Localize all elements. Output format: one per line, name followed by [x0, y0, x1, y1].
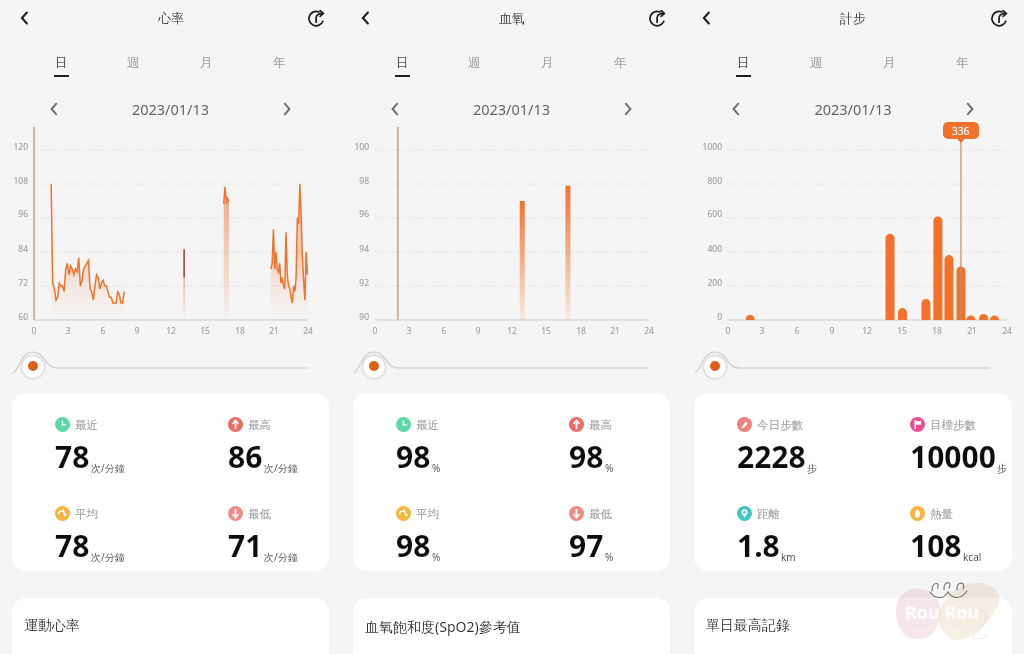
button[interactable]: 年 — [243, 36, 316, 82]
staticText: 血氧飽和度(SpO2)參考值 — [365, 617, 521, 636]
button[interactable]: Previous day — [723, 96, 749, 122]
staticText: 78 — [55, 436, 90, 477]
button[interactable]: 日 — [25, 36, 97, 82]
staticText: 72 — [0, 277, 28, 289]
staticText: 最低 — [248, 507, 271, 521]
staticText: 3 — [58, 325, 78, 337]
staticText: 200 — [682, 277, 722, 289]
staticText: 24 — [298, 325, 318, 337]
staticText: 108 — [0, 175, 28, 187]
staticText: Rou Rou — [905, 600, 980, 625]
staticText: 今日步數 — [757, 418, 803, 432]
staticText: 24 — [639, 325, 659, 337]
staticText: 次/分鐘 — [264, 550, 298, 564]
button[interactable]: 月 — [511, 36, 584, 82]
staticText: 單日最高記錄 — [706, 617, 790, 635]
button[interactable]: 日 — [366, 36, 438, 82]
staticText: 18 — [927, 325, 947, 337]
button[interactable]: 月 — [853, 36, 926, 82]
staticText: 年 — [273, 55, 286, 71]
staticText: 84 — [0, 243, 28, 255]
button[interactable]: Next day — [274, 96, 300, 122]
staticText: 21 — [962, 325, 982, 337]
button[interactable]: 月 — [170, 36, 243, 82]
staticText: 6 — [787, 325, 807, 337]
button[interactable]: Back — [350, 3, 380, 33]
staticText: 96 — [341, 208, 369, 220]
button[interactable]: Time slider — [22, 355, 44, 377]
staticText: 年 — [614, 55, 627, 71]
staticText: 6 — [93, 325, 113, 337]
staticText: 18 — [571, 325, 591, 337]
button[interactable]: Time slider — [704, 355, 726, 377]
staticText: 12 — [502, 325, 522, 337]
staticText: https://rourou.com — [907, 626, 961, 634]
button[interactable]: Time slider — [363, 355, 385, 377]
staticText: 最近 — [75, 418, 98, 432]
staticText: 9 — [468, 325, 488, 337]
button[interactable]: 週 — [438, 36, 511, 82]
staticText: 98 — [341, 175, 369, 187]
staticText: 120 — [0, 141, 28, 153]
staticText: 15 — [892, 325, 912, 337]
staticText: 97 — [569, 525, 604, 566]
button[interactable]: 週 — [780, 36, 853, 82]
staticText: 92 — [341, 277, 369, 289]
staticText: 目標步數 — [930, 418, 976, 432]
staticText: 1000 — [682, 141, 722, 153]
staticText: 100 — [341, 141, 369, 153]
staticText: 熱量 — [930, 507, 953, 521]
staticText: 600 — [682, 208, 722, 220]
button[interactable]: Previous day — [41, 96, 67, 122]
button[interactable]: 週 — [97, 36, 170, 82]
button[interactable]: 最近 — [12, 393, 329, 571]
staticText: 平均 — [416, 507, 439, 521]
button[interactable]: Refresh — [302, 3, 332, 33]
staticText: 71 — [228, 525, 263, 566]
staticText: 15 — [195, 325, 215, 337]
staticText: 0 — [682, 311, 722, 323]
button[interactable]: 336 — [943, 122, 979, 139]
staticText: 最低 — [589, 507, 612, 521]
staticText: 94 — [341, 243, 369, 255]
button[interactable]: Back — [9, 3, 39, 33]
staticText: 10000 — [910, 436, 996, 477]
button[interactable]: Back — [691, 3, 721, 33]
staticText: 平均 — [75, 507, 98, 521]
button[interactable]: 運動心率 — [12, 598, 329, 654]
button[interactable]: Previous day — [382, 96, 408, 122]
button[interactable]: Refresh — [985, 3, 1015, 33]
staticText: 最高 — [248, 418, 271, 432]
staticText: % — [605, 461, 614, 475]
staticText: 6 — [434, 325, 454, 337]
staticText: 日 — [737, 55, 750, 71]
staticText: 日 — [396, 55, 409, 71]
button[interactable]: 年 — [926, 36, 999, 82]
staticText: 週 — [810, 55, 823, 71]
button[interactable]: 血氧飽和度(SpO2)參考值 — [353, 598, 670, 654]
staticText: 月 — [200, 55, 213, 71]
button[interactable]: Next day — [957, 96, 983, 122]
button[interactable]: Refresh — [643, 3, 673, 33]
staticText: 108 — [910, 525, 962, 566]
staticText: 800 — [682, 175, 722, 187]
staticText: 步 — [807, 462, 817, 475]
staticText: 15 — [536, 325, 556, 337]
staticText: % — [432, 550, 441, 564]
button[interactable]: 年 — [584, 36, 657, 82]
button[interactable]: 日 — [707, 36, 780, 82]
staticText: 9 — [822, 325, 842, 337]
staticText: % — [432, 461, 441, 475]
staticText: kcal — [963, 550, 982, 564]
staticText: 78 — [55, 525, 90, 566]
staticText: 週 — [468, 55, 481, 71]
staticText: 最高 — [589, 418, 612, 432]
staticText: 21 — [605, 325, 625, 337]
button[interactable]: 今日步數 — [694, 393, 1012, 571]
staticText: 2023/01/13 — [749, 99, 957, 119]
button[interactable]: Next day — [615, 96, 641, 122]
staticText: 日 — [55, 55, 68, 71]
button[interactable]: 最近 — [353, 393, 670, 571]
staticText: 步 — [997, 462, 1007, 475]
button[interactable]: 單日最高記錄 — [694, 598, 1012, 654]
